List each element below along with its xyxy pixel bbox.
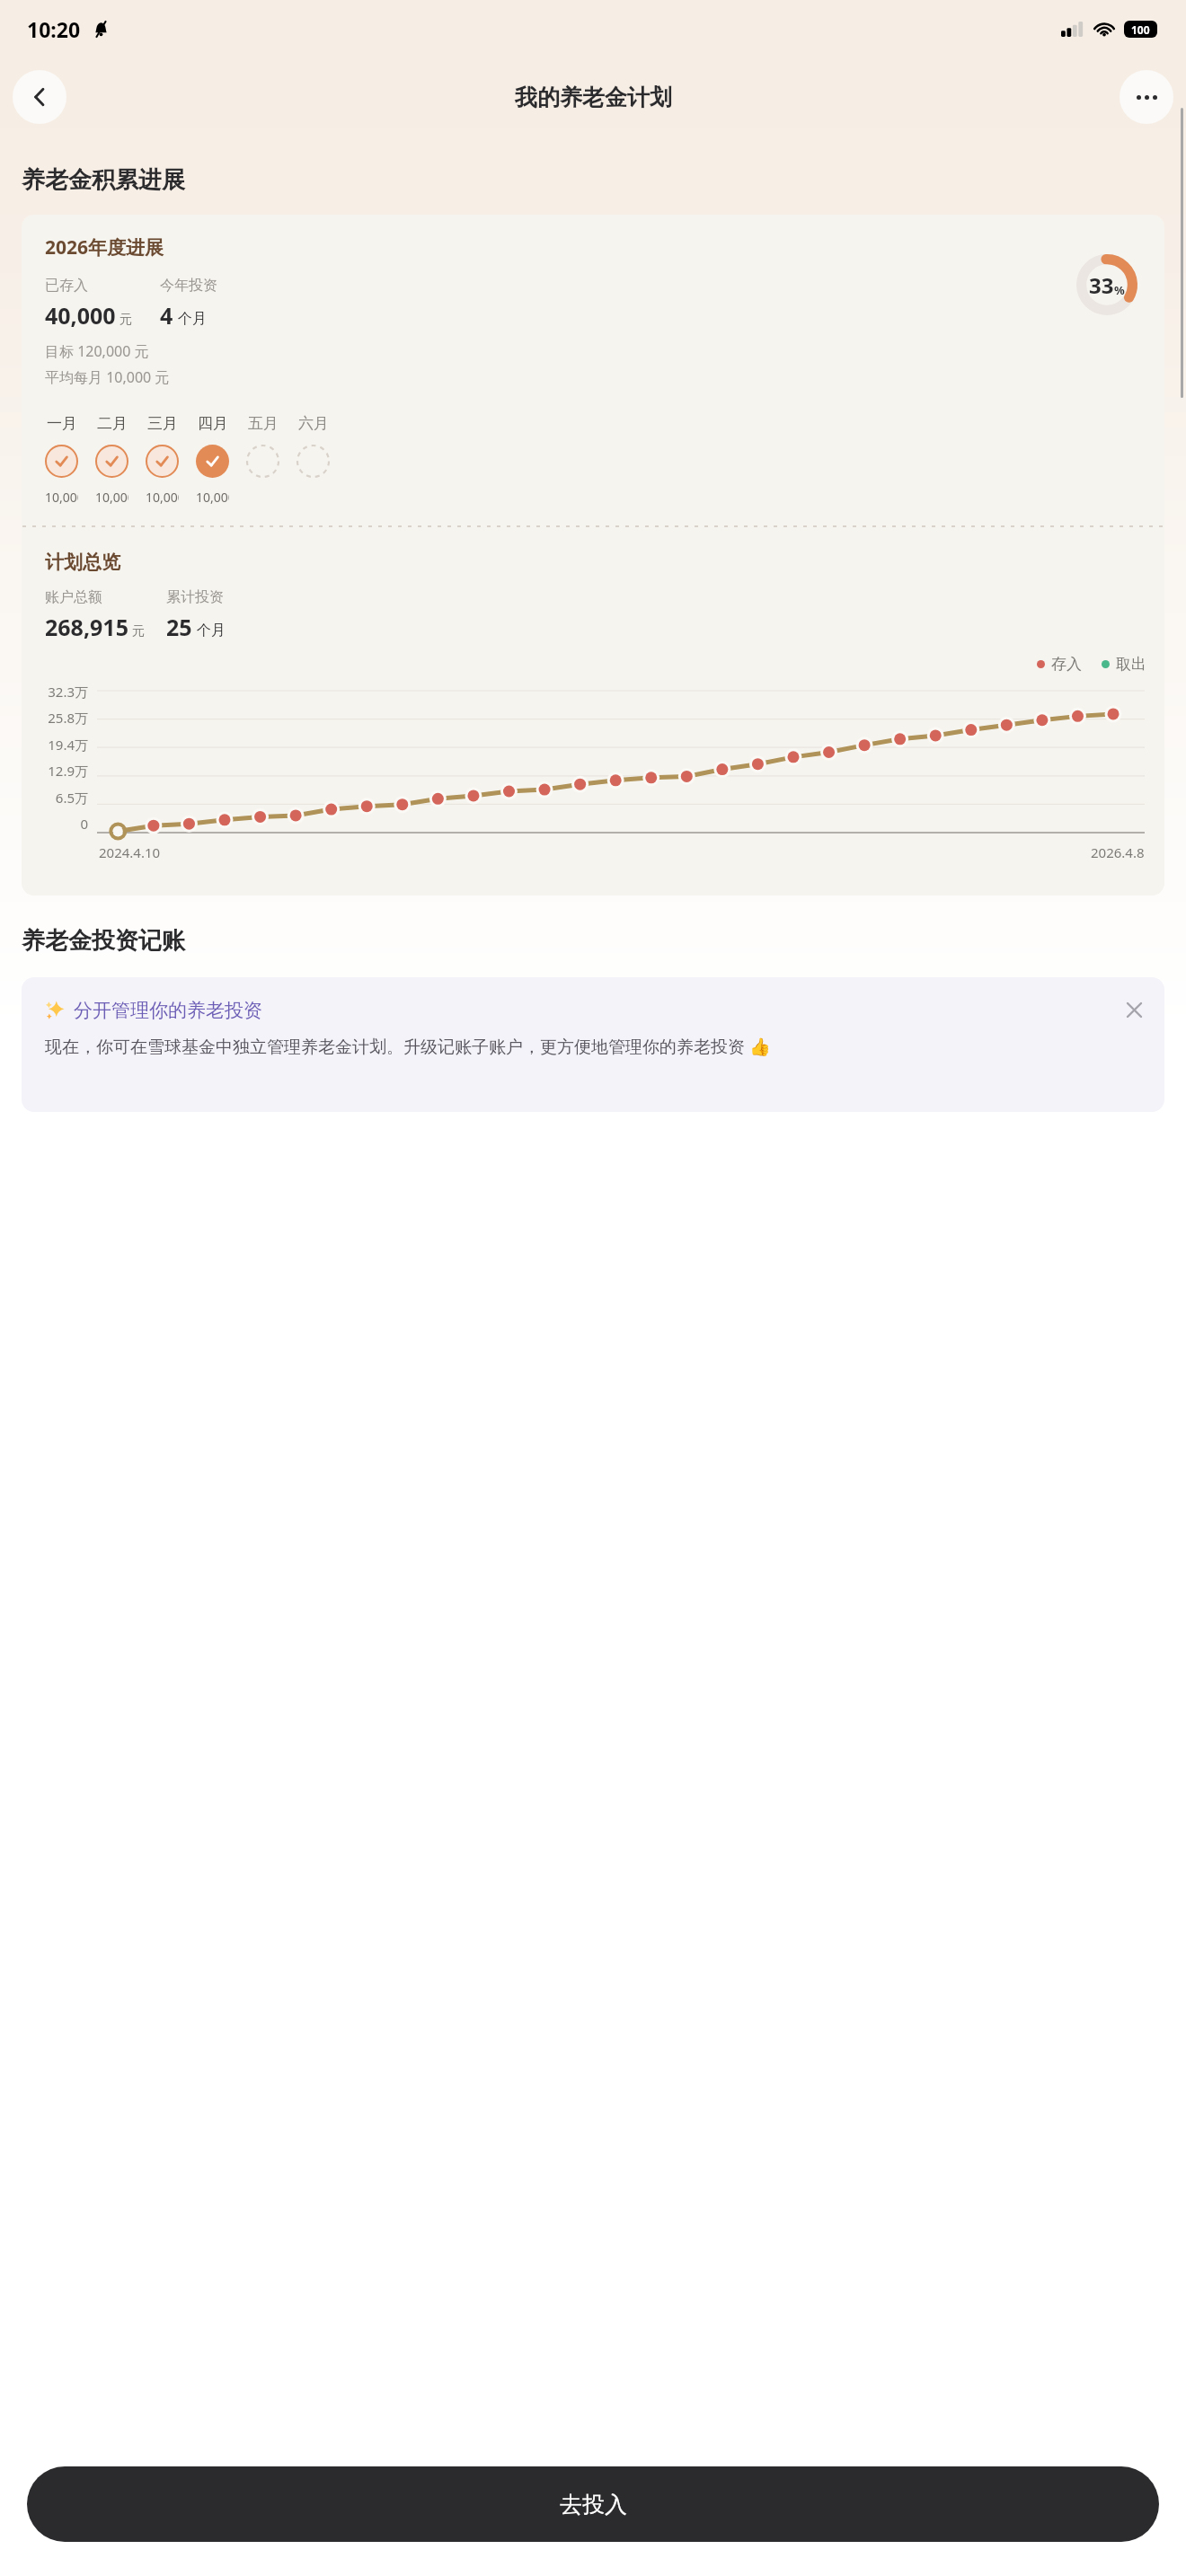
staticText: 100 [1131, 22, 1150, 37]
button[interactable]: 一月 [45, 414, 78, 506]
staticText: 10:20 [27, 15, 81, 43]
staticText: 6.5万 [32, 789, 88, 807]
staticText: 40,000 [45, 300, 116, 331]
staticText: 33 [1089, 270, 1114, 300]
staticText: 累计投资 [166, 588, 224, 606]
staticText: 2026年度进展 [45, 234, 164, 260]
staticText: 我的养老金计划 [515, 84, 672, 111]
staticText: 一月 [47, 414, 77, 433]
staticText: 个月 [197, 622, 226, 640]
staticText: 养老金积累进展 [22, 165, 185, 195]
staticText: 10,000 元 [146, 489, 179, 506]
staticText: 养老金投资记账 [22, 926, 185, 956]
staticText: 元 [132, 623, 145, 640]
staticText: 目标 120,000 元 [45, 341, 149, 361]
button[interactable]: 三月 [146, 414, 179, 506]
staticText: 去投入 [560, 2491, 627, 2519]
staticText: 现在，你可在雪球基金中独立管理养老金计划。升级记账子账户，更方便地管理你的养老投… [45, 1035, 771, 1058]
staticText: 25 [166, 612, 192, 642]
button[interactable]: 分开管理你的养老投资 [22, 977, 1164, 1112]
staticText: 268,915 [45, 612, 128, 642]
staticText: 2026.4.8 [1091, 843, 1145, 861]
staticText: 2024.4.10 [99, 843, 161, 861]
button[interactable]: 更多 [1120, 70, 1173, 124]
button[interactable]: 返回 [13, 70, 66, 124]
staticText: 账户总额 [45, 588, 102, 606]
staticText: 取出 [1116, 655, 1146, 674]
button[interactable]: 2026年度进展 [22, 215, 1164, 895]
staticText: 六月 [298, 414, 329, 433]
staticText: 三月 [147, 414, 178, 433]
staticText: 已存入 [45, 277, 88, 295]
staticText: 12.9万 [32, 762, 88, 780]
button[interactable]: 六月 [296, 414, 330, 489]
button[interactable]: 二月 [95, 414, 128, 506]
button[interactable]: 去投入 [27, 2466, 1159, 2542]
button[interactable]: 四月 [196, 414, 229, 506]
staticText: 计划总览 [45, 551, 120, 574]
staticText: 二月 [97, 414, 128, 433]
staticText: 四月 [198, 414, 228, 433]
staticText: 10,000 元 [196, 489, 229, 506]
staticText: 10,000 元 [45, 489, 78, 506]
staticText: 平均每月 10,000 元 [45, 367, 170, 387]
staticText: % [1114, 282, 1125, 298]
button[interactable]: 关闭 [1118, 993, 1150, 1026]
staticText: 元 [119, 312, 132, 328]
staticText: 19.4万 [32, 736, 88, 754]
staticText: 五月 [248, 414, 279, 433]
button[interactable]: 五月 [246, 414, 279, 489]
staticText: 10,000 元 [95, 489, 128, 506]
staticText: 今年投资 [160, 277, 217, 295]
staticText: 存入 [1051, 655, 1082, 674]
staticText: 个月 [178, 310, 207, 328]
staticText: 25.8万 [32, 709, 88, 727]
staticText: 4 [160, 300, 173, 331]
staticText: 分开管理你的养老投资 [74, 999, 262, 1022]
staticText: 32.3万 [32, 683, 88, 701]
staticText: 0 [32, 815, 88, 833]
